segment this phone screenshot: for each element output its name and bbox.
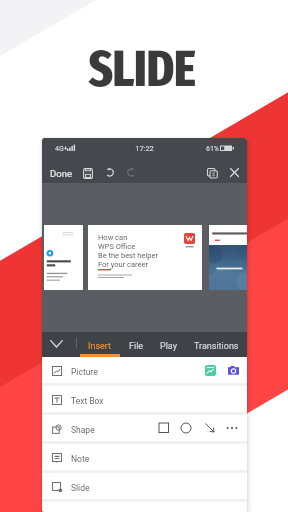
staticText: SLIDE — [0, 39, 286, 100]
button[interactable]: Text Box — [42, 386, 247, 412]
button[interactable] — [44, 225, 83, 290]
button[interactable]: Play — [155, 335, 182, 357]
button[interactable]: Save — [79, 164, 97, 183]
button[interactable]: Picture — [42, 357, 247, 383]
button[interactable]: Close — [226, 164, 243, 181]
button[interactable]: Oval — [180, 422, 192, 434]
staticText: 17:22 — [42, 144, 247, 153]
staticText: Play — [160, 341, 177, 352]
staticText: Picture — [71, 367, 98, 377]
staticText: Shape — [71, 425, 95, 435]
button[interactable]: Insert — [83, 335, 117, 357]
staticText: For your career — [98, 260, 149, 269]
staticText: Note — [71, 454, 90, 464]
button[interactable]: Redo — [122, 164, 139, 181]
button[interactable]: Done — [46, 164, 76, 183]
staticText: 4G+ — [55, 145, 68, 153]
button[interactable]: Line — [204, 422, 216, 434]
button[interactable]: Take photo — [228, 365, 239, 376]
staticText: Text Box — [71, 396, 104, 406]
staticText: File — [129, 341, 144, 352]
button[interactable]: Shape — [42, 415, 247, 441]
button[interactable]: Choose from gallery — [205, 365, 216, 376]
staticText: Done — [50, 168, 72, 179]
staticText: Slide — [71, 483, 90, 493]
button[interactable] — [209, 225, 247, 290]
button[interactable]: File — [124, 335, 149, 357]
staticText: 61% — [206, 145, 219, 153]
button[interactable]: Slide — [42, 473, 247, 499]
button[interactable]: Note — [42, 444, 247, 470]
button[interactable]: How can — [88, 225, 202, 290]
button[interactable]: Transitions — [189, 335, 244, 357]
button[interactable]: More shapes — [226, 422, 238, 434]
button[interactable]: Rectangle — [158, 422, 170, 434]
staticText: WPS Office — [98, 242, 136, 251]
button[interactable]: Collapse ribbon — [46, 334, 67, 353]
staticText: Insert — [88, 341, 112, 352]
staticText: Transitions — [194, 341, 239, 352]
button[interactable]: Undo — [101, 164, 118, 181]
staticText: Be the best helper — [98, 251, 158, 260]
staticText: How can — [98, 233, 128, 242]
button[interactable]: Script — [203, 164, 222, 183]
